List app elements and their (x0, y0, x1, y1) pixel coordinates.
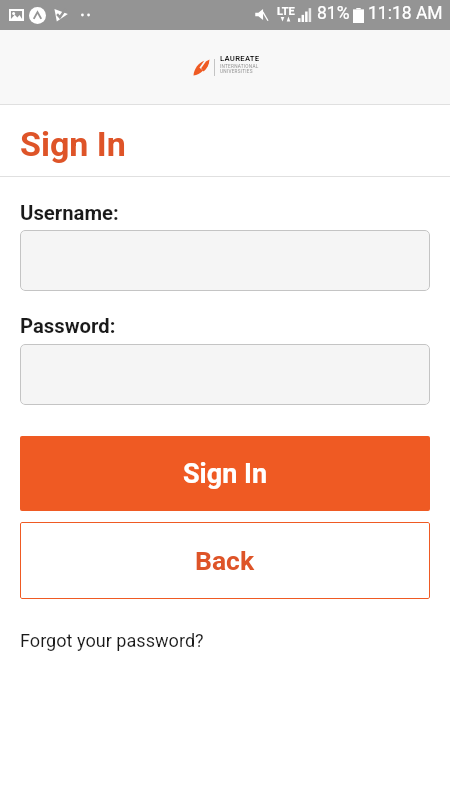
staticText: Sign In (20, 124, 126, 164)
staticText: Username: (20, 201, 119, 225)
staticText: Sign In (183, 458, 268, 490)
button[interactable]: Back (20, 522, 430, 599)
staticText: INTERNATIONAL (220, 64, 259, 70)
staticText: Forgot your password? (20, 630, 204, 651)
button[interactable]: Forgot your password? (20, 630, 204, 651)
staticText: UNIVERSITIES (220, 69, 253, 75)
staticText: Back (195, 545, 255, 576)
staticText: 81% (317, 3, 350, 24)
staticText: Password: (20, 314, 116, 338)
button[interactable] (20, 344, 430, 405)
staticText: 11:18 AM (368, 3, 443, 24)
button[interactable]: Sign In (20, 436, 430, 511)
staticText: LTE (277, 5, 295, 18)
staticText: LAUREATE (220, 54, 260, 63)
button[interactable] (20, 230, 430, 291)
